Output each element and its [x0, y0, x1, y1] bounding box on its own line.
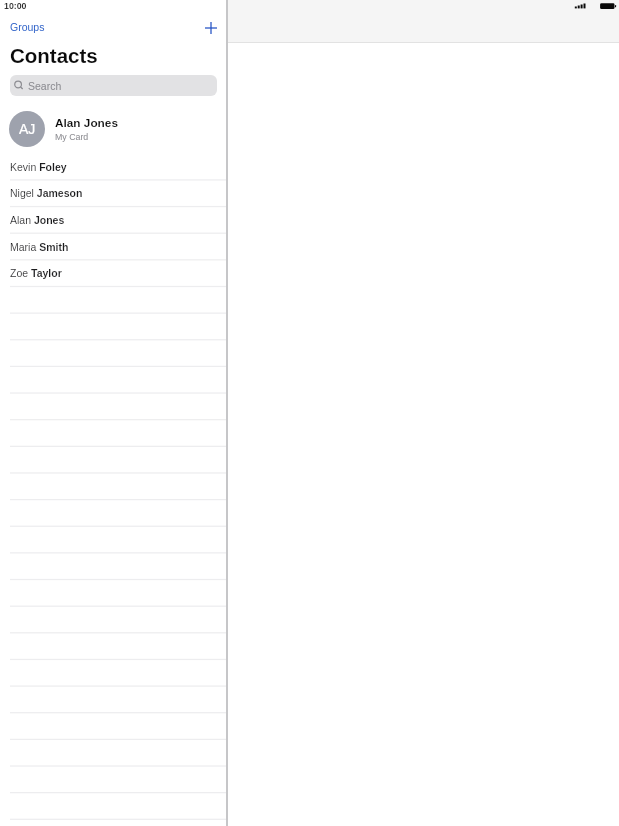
staticText: Contacts	[10, 44, 98, 67]
staticText: Alan Jones	[10, 214, 65, 226]
button[interactable]: AJ	[0, 106, 226, 151]
button[interactable]: Search	[10, 75, 217, 96]
staticText: AJ	[19, 121, 36, 137]
button[interactable]: Maria Smith	[0, 233, 226, 260]
staticText: Search	[28, 80, 62, 92]
button[interactable]: Kevin Foley	[0, 153, 226, 180]
staticText: Groups	[10, 21, 45, 33]
staticText: Alan Jones	[55, 116, 118, 129]
button[interactable]: Add contact	[199, 16, 222, 39]
staticText: Zoe Taylor	[10, 267, 62, 279]
staticText: Nigel Jameson	[10, 187, 83, 199]
button[interactable]: Groups	[2, 17, 53, 37]
button[interactable]: Alan Jones	[0, 206, 226, 233]
button[interactable]: Nigel Jameson	[0, 179, 226, 206]
button[interactable]: Zoe Taylor	[0, 259, 226, 286]
staticText: My Card	[55, 132, 89, 142]
staticText: Maria Smith	[10, 241, 69, 253]
staticText: 10:00	[4, 1, 27, 11]
staticText: Kevin Foley	[10, 161, 67, 173]
